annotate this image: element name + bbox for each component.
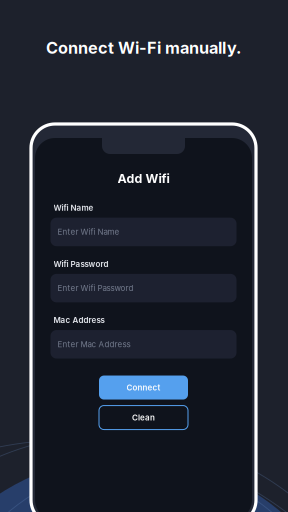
staticText: Enter Mac Address (57, 339, 130, 349)
button[interactable]: Enter Wifi Name (50, 218, 236, 246)
staticText: Wifi Password (53, 259, 108, 269)
staticText: Connect Wi-Fi manually. (46, 38, 241, 58)
staticText: Add Wifi (117, 171, 169, 186)
staticText: Mac Address (53, 315, 104, 325)
button[interactable]: Connect (99, 375, 188, 399)
staticText: Clean (132, 413, 155, 422)
staticText: Enter Wifi Password (57, 283, 133, 293)
staticText: Connect (126, 383, 160, 392)
button[interactable]: Clean (99, 405, 188, 429)
button[interactable]: Enter Mac Address (50, 330, 236, 358)
staticText: Wifi Name (53, 203, 93, 213)
staticText: Enter Wifi Name (57, 227, 119, 237)
button[interactable]: Enter Wifi Password (50, 274, 236, 302)
